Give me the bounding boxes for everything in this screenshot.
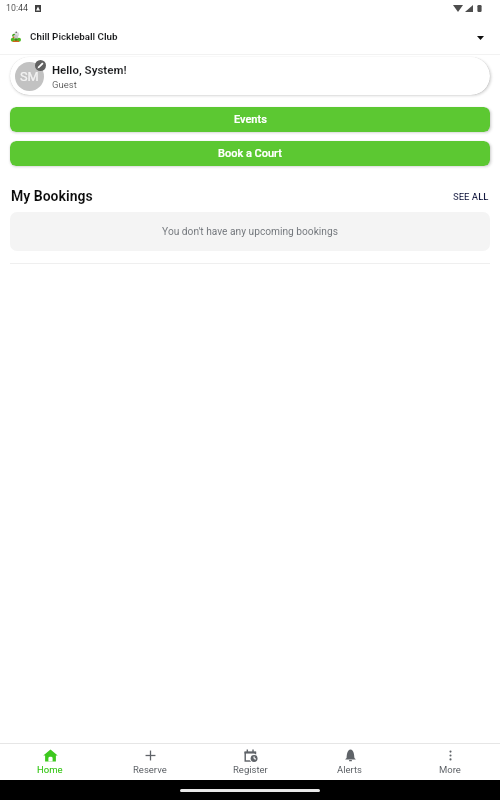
- button[interactable]: SM: [10, 57, 490, 95]
- staticText: 10:44: [6, 3, 28, 13]
- staticText: SEE ALL: [453, 191, 489, 202]
- button[interactable]: Home: [0, 744, 100, 780]
- button[interactable]: SEE ALL: [447, 188, 495, 205]
- button[interactable]: Chill Pickleball Club: [0, 19, 500, 54]
- staticText: Reserve: [133, 764, 167, 775]
- button[interactable]: More: [400, 744, 500, 780]
- staticText: Chill Pickleball Club: [30, 31, 118, 42]
- staticText: You don't have any upcoming bookings: [162, 226, 338, 238]
- button[interactable]: Book a Court: [10, 141, 490, 166]
- staticText: SM: [20, 69, 39, 84]
- staticText: Alerts: [337, 764, 363, 775]
- staticText: Book a Court: [218, 147, 282, 160]
- button[interactable]: Alerts: [300, 744, 400, 780]
- staticText: Hello, System!: [52, 63, 127, 76]
- staticText: Events: [234, 113, 267, 126]
- button[interactable]: Events: [10, 107, 490, 132]
- staticText: Guest: [52, 79, 77, 90]
- button[interactable]: Select club: [465, 23, 493, 51]
- staticText: Register: [233, 764, 268, 775]
- staticText: More: [439, 764, 461, 775]
- button[interactable]: Register: [200, 744, 300, 780]
- staticText: Home: [37, 764, 63, 775]
- staticText: My Bookings: [11, 188, 93, 204]
- button[interactable]: Reserve: [100, 744, 200, 780]
